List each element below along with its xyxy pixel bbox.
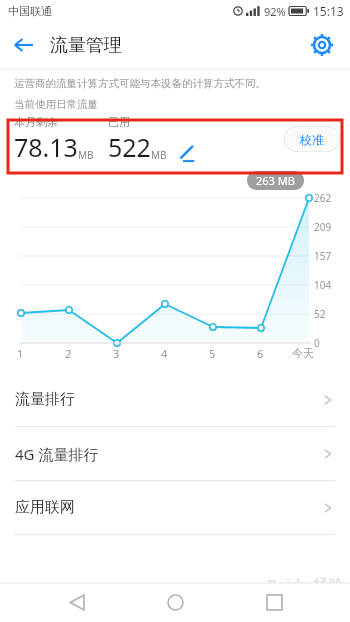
staticText: 4 [161, 346, 171, 361]
staticText: 本月剩余 [14, 115, 58, 129]
staticText: 今天 [292, 346, 318, 360]
button[interactable]: Back [6, 27, 42, 63]
staticText: 流量管理 [50, 34, 122, 57]
staticText: 3 [113, 346, 123, 361]
staticText: 263 MB [256, 173, 295, 188]
staticText: 78.13 [14, 130, 78, 164]
staticText: 2 [65, 346, 75, 361]
staticText: 已用 [108, 115, 130, 129]
button[interactable]: 校准 [284, 126, 340, 152]
button[interactable]: Home [153, 583, 197, 622]
staticText: 5 [209, 346, 219, 361]
button[interactable]: Edit data limit [175, 141, 201, 165]
staticText: 209 [314, 220, 332, 234]
staticText: MB [151, 148, 167, 162]
staticText: 1 [17, 346, 27, 361]
button[interactable]: Recents [252, 583, 296, 622]
button[interactable]: Back [55, 583, 99, 622]
staticText: MB [78, 148, 94, 162]
button[interactable]: 4G 流量排行 [0, 427, 350, 480]
staticText: 522 [108, 130, 151, 164]
staticText: 15:13 [313, 3, 344, 19]
staticText: 应用联网 [15, 498, 75, 517]
staticText: 6 [257, 346, 267, 361]
staticText: 中国联通 [8, 4, 52, 18]
staticText: 流量排行 [15, 390, 75, 409]
button[interactable]: 流量排行 [0, 373, 350, 426]
staticText: 当前使用日常流量 [14, 98, 98, 111]
staticText: 92% [264, 4, 286, 19]
staticText: 104 [314, 278, 332, 292]
staticText: 校准 [300, 132, 324, 147]
staticText: 4G 流量排行 [15, 444, 99, 464]
staticText: 157 [314, 249, 332, 263]
button[interactable]: 应用联网 [0, 481, 350, 534]
staticText: 0 [314, 336, 320, 350]
staticText: 262 [314, 191, 332, 205]
staticText: 52 [314, 307, 326, 321]
staticText: 运营商的流量计算方式可能与本设备的计算方式不同。 [14, 77, 266, 90]
staticText: Baidu 经验 [267, 574, 344, 594]
button[interactable]: Settings [304, 27, 340, 63]
